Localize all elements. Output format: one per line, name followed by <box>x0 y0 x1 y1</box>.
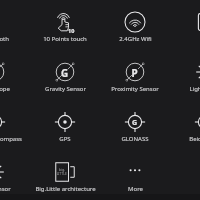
staticText: Light sense <box>189 85 200 93</box>
button[interactable]: Light sense <box>172 61 200 93</box>
staticText: Bluetooth <box>0 35 9 43</box>
staticText: Gyroscope <box>0 85 10 93</box>
staticText: 10 Points touch <box>43 35 87 43</box>
button[interactable]: GLONASS <box>102 111 168 143</box>
button[interactable]: Electronic compass <box>0 111 28 143</box>
staticText: Big.Little architecture <box>35 185 96 193</box>
button[interactable]: Hall sensor <box>0 161 28 193</box>
button[interactable]: Beidou nav <box>172 111 200 143</box>
staticText: More <box>128 185 143 193</box>
staticText: 2.4GHz Wifi <box>119 35 152 43</box>
button[interactable]: More <box>102 161 168 193</box>
staticText: Beidou nav <box>189 135 200 143</box>
button[interactable]: Gyroscope <box>0 61 28 93</box>
button[interactable]: Bluetooth <box>0 11 28 43</box>
staticText: Gravity Sensor <box>45 85 86 93</box>
button[interactable]: Proximity Sensor <box>102 61 168 93</box>
button[interactable]: SIM <box>172 11 200 43</box>
staticText: GPS <box>59 135 71 143</box>
button[interactable]: Gravity Sensor <box>32 61 98 93</box>
staticText: Electronic compass <box>0 135 22 143</box>
button[interactable]: GPS <box>32 111 98 143</box>
staticText: GLONASS <box>121 135 149 143</box>
staticText: Hall sensor <box>0 185 11 193</box>
button[interactable]: 2.4GHz Wifi <box>102 11 168 43</box>
button[interactable]: 10 Points touch <box>32 11 98 43</box>
staticText: Proximity Sensor <box>111 85 159 93</box>
button[interactable]: Big.Little architecture <box>32 161 98 193</box>
